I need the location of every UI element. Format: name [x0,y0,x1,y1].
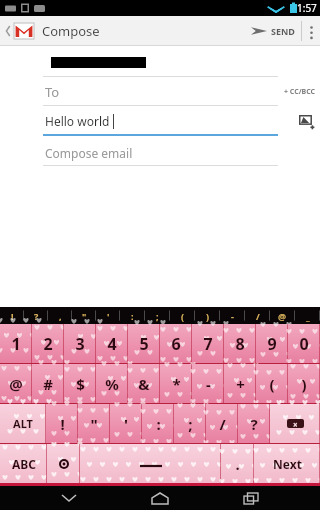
staticText: 6 [171,333,181,355]
button[interactable]: Hide keyboard [47,486,91,510]
staticText: / [256,310,260,322]
staticText: ' [107,310,110,322]
staticText: 0 [299,333,309,355]
button[interactable]: ' [96,307,120,324]
staticText: - [206,374,211,394]
button[interactable]: - [192,364,224,403]
button[interactable]: 7 [192,324,224,363]
button[interactable]: 6 [160,324,192,363]
button[interactable]: More options [302,16,320,46]
button[interactable]: ALT [0,404,46,443]
staticText: & [138,374,150,394]
button[interactable]: Recent apps [229,486,273,510]
button[interactable]: 4 [96,324,128,363]
staticText: " [82,310,87,322]
staticText: ABC [12,456,36,472]
staticText: Hello world [45,113,113,129]
button[interactable]: / [245,307,270,324]
staticText: 1 [11,333,21,355]
staticText: : [156,414,161,434]
button[interactable]: Space [80,444,221,483]
staticText: ( [269,374,275,394]
button[interactable]: 2 [32,324,64,363]
button[interactable]: ? [24,307,48,324]
staticText: 9 [267,333,277,355]
button[interactable]: % [96,364,128,403]
staticText: Next [273,456,302,472]
staticText: * [172,374,181,394]
button[interactable]: ? [238,404,270,443]
button[interactable]: - [220,307,245,324]
staticText: ) [301,374,307,394]
button[interactable]: 8 [224,324,256,363]
button[interactable]: $ [64,364,96,403]
button[interactable]: 0 [288,324,320,363]
button[interactable]: ABC [0,444,47,483]
staticText: 2 [43,333,53,355]
button[interactable]: * [160,364,192,403]
button[interactable]: Attach picture [298,112,316,130]
button[interactable]: Compose [0,16,108,46]
staticText: ; [156,310,159,322]
button[interactable]: ) [195,307,220,324]
button[interactable]: 9 [256,324,288,363]
button[interactable]: ( [170,307,195,324]
button[interactable]: To [0,79,320,105]
staticText: ? [250,414,258,434]
staticText: 5 [139,333,149,355]
staticText: _ [306,310,310,322]
other: Space [140,461,162,467]
button[interactable]: 5 [128,324,160,363]
button[interactable]: Emoji [47,444,80,483]
button[interactable]: SEND [245,16,301,46]
button[interactable]: ) [288,364,320,403]
button[interactable]: ( [256,364,288,403]
staticText: , [59,310,62,322]
button[interactable]: ; [174,404,206,443]
other: Emoji [59,459,69,469]
button[interactable]: _ [295,307,320,324]
button[interactable]: ' [110,404,142,443]
button[interactable]: Backspace [270,404,320,443]
staticText: To [45,83,60,101]
button[interactable]: / [206,404,238,443]
button[interactable]: " [78,404,110,443]
staticText: × [293,419,298,428]
button[interactable]: # [32,364,64,403]
button[interactable]: Next [254,444,320,483]
button[interactable]: 3 [64,324,96,363]
button[interactable]: ; [145,307,170,324]
staticText: ! [11,310,14,322]
button[interactable]: : [142,404,174,443]
staticText: $ [76,374,85,394]
button[interactable]: . [221,444,254,483]
other: Backspace [287,419,304,428]
button[interactable]: Hello world [0,108,320,134]
button[interactable]: ! [46,404,78,443]
staticText: ALT [13,416,33,431]
staticText: % [105,374,119,394]
staticText: ! [60,414,65,434]
staticText: @ [278,310,287,322]
staticText: / [219,414,226,434]
staticText: . [235,454,240,474]
button[interactable]: @ [0,364,32,403]
button[interactable]: + [224,364,256,403]
staticText: ; [188,414,193,434]
staticText: ? [34,310,39,322]
button[interactable]: 1 [0,324,32,363]
staticText: ( [181,310,185,322]
button[interactable]: , [48,307,72,324]
staticText: : [131,310,134,322]
staticText: Compose email [45,145,133,161]
staticText: 1:57 [297,1,317,15]
button[interactable]: ! [0,307,24,324]
button[interactable]: & [128,364,160,403]
button[interactable]: Home [138,486,182,510]
button[interactable]: @ [270,307,295,324]
staticText: 3 [75,333,85,355]
button[interactable]: Compose email [0,141,320,165]
button[interactable]: : [120,307,145,324]
button[interactable]: + CC/BCC [284,87,316,97]
button[interactable]: " [72,307,96,324]
